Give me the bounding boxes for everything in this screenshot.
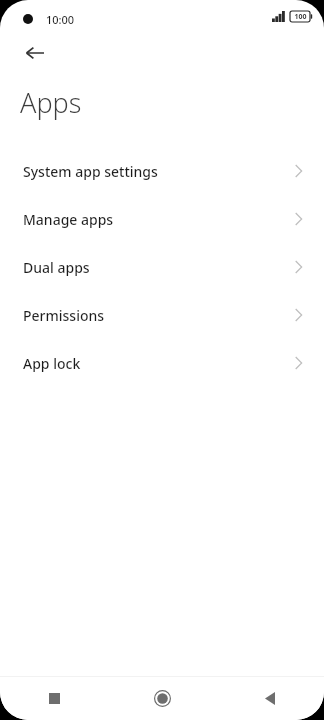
button[interactable]: Manage apps xyxy=(0,195,324,243)
button[interactable]: Recents xyxy=(0,677,108,720)
button[interactable]: System app settings xyxy=(0,147,324,195)
staticText: Manage apps xyxy=(23,210,114,229)
staticText: System app settings xyxy=(23,162,158,181)
button[interactable]: Dual apps xyxy=(0,243,324,291)
staticText: Apps xyxy=(20,84,82,121)
button[interactable]: Back xyxy=(216,677,324,720)
staticText: 100 xyxy=(294,12,307,22)
staticText: App lock xyxy=(23,354,81,373)
button[interactable]: Back xyxy=(14,32,56,74)
staticText: 10:00 xyxy=(46,12,75,27)
button[interactable]: App lock xyxy=(0,339,324,387)
staticText: Permissions xyxy=(23,306,105,325)
button[interactable]: Permissions xyxy=(0,291,324,339)
button[interactable]: Home xyxy=(108,677,216,720)
staticText: Dual apps xyxy=(23,258,90,277)
